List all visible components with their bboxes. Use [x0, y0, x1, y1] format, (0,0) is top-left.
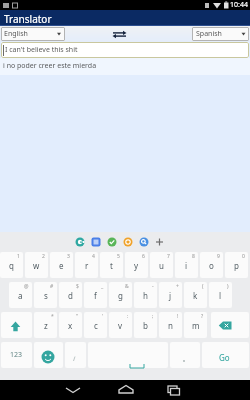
- button[interactable]: u: [150, 252, 173, 278]
- staticText: z: [44, 320, 48, 331]
- staticText: #: [50, 283, 54, 290]
- staticText: l: [219, 290, 222, 301]
- staticText: *: [51, 313, 54, 320]
- staticText: ': [102, 313, 104, 320]
- staticText: j: [169, 290, 172, 301]
- button[interactable]: p: [225, 252, 248, 278]
- button[interactable]: f: [84, 282, 107, 308]
- button[interactable]: t: [100, 252, 123, 278]
- button[interactable]: s: [34, 282, 57, 308]
- button[interactable]: [88, 342, 168, 368]
- button[interactable]: i: [175, 252, 198, 278]
- staticText: Spanish: [196, 29, 222, 39]
- staticText: &: [125, 283, 129, 290]
- button[interactable]: I can't believe this shit: [1, 42, 249, 58]
- staticText: ": [76, 313, 79, 320]
- staticText: p: [234, 260, 239, 271]
- button[interactable]: g: [109, 282, 132, 308]
- button[interactable]: w: [25, 252, 48, 278]
- button[interactable]: Spanish: [192, 27, 249, 41]
- button[interactable]: r: [75, 252, 98, 278]
- button[interactable]: x: [59, 312, 82, 338]
- staticText: I can't believe this shit: [5, 45, 78, 55]
- staticText: $: [76, 283, 79, 290]
- staticText: 123: [10, 350, 23, 360]
- staticText: i no poder creer este mierda: [3, 61, 97, 71]
- staticText: 3: [67, 253, 70, 260]
- button[interactable]: m: [184, 312, 207, 338]
- staticText: -: [152, 283, 154, 290]
- staticText: m: [192, 320, 200, 331]
- staticText: k: [193, 290, 198, 301]
- staticText: 10:44: [230, 0, 248, 10]
- staticText: t: [110, 260, 113, 271]
- staticText: n: [168, 320, 173, 331]
- staticText: c: [94, 320, 98, 331]
- button[interactable]: v: [109, 312, 132, 338]
- staticText: d: [68, 290, 73, 301]
- staticText: w: [33, 260, 40, 271]
- staticText: 1: [17, 253, 20, 260]
- button[interactable]: [170, 342, 200, 368]
- staticText: ): [227, 283, 229, 290]
- button[interactable]: q: [0, 252, 23, 278]
- button[interactable]: l: [209, 282, 232, 308]
- staticText: 4: [92, 253, 95, 260]
- staticText: @: [24, 283, 29, 290]
- staticText: English: [4, 29, 28, 39]
- button[interactable]: z: [34, 312, 57, 338]
- button[interactable]: y: [125, 252, 148, 278]
- staticText: v: [118, 320, 123, 331]
- staticText: a: [18, 290, 23, 301]
- staticText: 6: [142, 253, 145, 260]
- staticText: e: [59, 260, 64, 271]
- staticText: (: [202, 283, 204, 290]
- staticText: y: [134, 260, 139, 271]
- staticText: 8: [192, 253, 195, 260]
- staticText: 7: [167, 253, 170, 260]
- staticText: 9: [217, 253, 220, 260]
- staticText: ?: [201, 313, 204, 320]
- staticText: Translator: [4, 12, 52, 26]
- staticText: q: [9, 260, 14, 271]
- button[interactable]: [65, 342, 86, 368]
- button[interactable]: English: [1, 27, 65, 41]
- staticText: ;: [152, 313, 154, 320]
- button[interactable]: a: [9, 282, 32, 308]
- button[interactable]: d: [59, 282, 82, 308]
- staticText: 2: [42, 253, 45, 260]
- staticText: u: [159, 260, 164, 271]
- staticText: Go: [219, 352, 230, 363]
- staticText: o: [209, 260, 214, 271]
- staticText: :: [127, 313, 129, 320]
- staticText: _: [101, 283, 104, 290]
- button[interactable]: b: [134, 312, 157, 338]
- button[interactable]: k: [184, 282, 207, 308]
- staticText: i: [185, 260, 188, 271]
- staticText: g: [118, 290, 123, 301]
- button[interactable]: [55, 380, 95, 400]
- staticText: r: [85, 260, 89, 271]
- button[interactable]: h: [134, 282, 157, 308]
- button[interactable]: e: [50, 252, 73, 278]
- button[interactable]: n: [159, 312, 182, 338]
- button[interactable]: j: [159, 282, 182, 308]
- staticText: 5: [117, 253, 120, 260]
- staticText: b: [143, 320, 148, 331]
- staticText: x: [68, 320, 73, 331]
- button[interactable]: [155, 380, 195, 400]
- button[interactable]: 123: [1, 342, 32, 368]
- button[interactable]: [1, 312, 32, 338]
- button[interactable]: [0, 10, 250, 26]
- button[interactable]: [211, 312, 249, 338]
- staticText: !: [177, 313, 179, 320]
- staticText: f: [94, 290, 97, 301]
- button[interactable]: o: [200, 252, 223, 278]
- button[interactable]: c: [84, 312, 107, 338]
- button[interactable]: [106, 380, 146, 400]
- staticText: 0: [242, 253, 245, 260]
- staticText: s: [44, 290, 48, 301]
- button[interactable]: [202, 342, 249, 368]
- button[interactable]: [34, 342, 63, 368]
- staticText: h: [143, 290, 148, 301]
